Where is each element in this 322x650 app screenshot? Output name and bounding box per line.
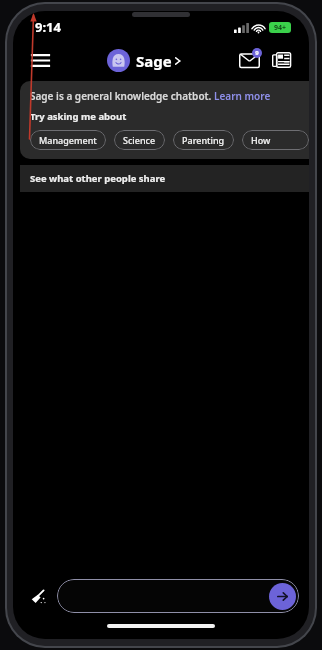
staticText: Parenting bbox=[182, 134, 225, 146]
staticText: Science bbox=[123, 134, 156, 146]
staticText: How Things bbox=[251, 134, 300, 146]
button[interactable]: Menu bbox=[27, 47, 53, 73]
staticText: 94+ bbox=[274, 23, 287, 33]
button[interactable]: Management bbox=[30, 130, 106, 150]
button[interactable]: Send bbox=[57, 579, 299, 613]
staticText: Try asking me about bbox=[30, 110, 127, 123]
button[interactable]: Sage bbox=[105, 49, 183, 72]
staticText: Sage bbox=[136, 51, 172, 71]
button[interactable]: Sage is a general knowledge chatbot. bbox=[20, 81, 309, 159]
button[interactable]: Messages bbox=[235, 46, 263, 74]
staticText: Management bbox=[39, 134, 97, 146]
button[interactable]: Parenting bbox=[173, 130, 234, 150]
button[interactable]: How Things bbox=[242, 130, 309, 150]
staticText: Sage is a general knowledge chatbot. bbox=[30, 89, 214, 103]
button[interactable]: See what other people share bbox=[20, 165, 309, 192]
button[interactable]: Send bbox=[269, 583, 296, 610]
button[interactable]: Learn more bbox=[214, 89, 271, 103]
staticText: 9 bbox=[255, 49, 259, 57]
staticText: 9:14 bbox=[35, 18, 61, 36]
button[interactable]: Science bbox=[114, 130, 165, 150]
staticText: See what other people share bbox=[30, 172, 166, 185]
button[interactable]: Clear chat bbox=[23, 581, 53, 611]
button[interactable]: News bbox=[267, 46, 295, 74]
